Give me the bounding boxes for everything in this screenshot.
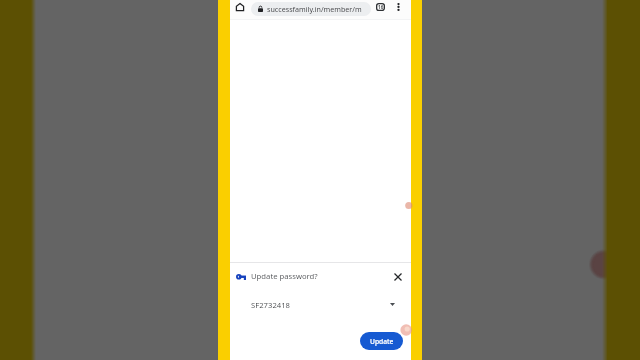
- staticText: 16: [378, 4, 384, 10]
- button[interactable]: SF2732418: [230, 295, 411, 315]
- button[interactable]: Close: [391, 270, 405, 284]
- staticText: successfamily.in/member/m: [267, 4, 362, 14]
- button[interactable]: Home: [233, 0, 247, 14]
- button[interactable]: More options: [391, 1, 405, 15]
- button[interactable]: successfamily.in/member/m: [251, 2, 371, 16]
- staticText: SF2732418: [251, 300, 290, 310]
- button[interactable]: Tabs: [373, 0, 387, 14]
- button[interactable]: Update: [360, 332, 403, 350]
- staticText: Update: [370, 337, 394, 346]
- staticText: Update password?: [251, 271, 318, 281]
